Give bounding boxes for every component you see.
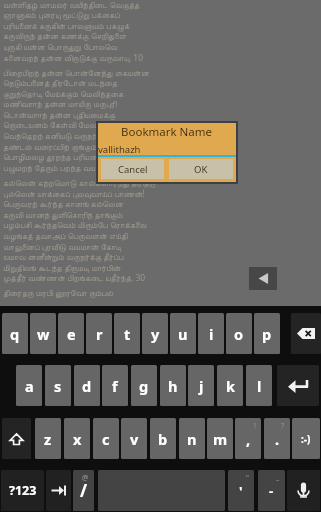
staticText: vallithazh (98, 143, 141, 156)
staticText: வெந்தெறற் கனியடு வருநர் வாழ்த்த (3, 130, 127, 141)
staticText: வள்ளிதழ் மாமலர் வயிந்திடை வெகுத்த (3, 0, 140, 10)
button[interactable]: f (102, 365, 128, 406)
staticText: s (54, 376, 62, 396)
staticText: மிறுதிலங் கூடந்த திருமடி மார்பின் (3, 262, 121, 273)
staticText: Cancel (118, 163, 148, 176)
button[interactable]: Voice input (287, 470, 320, 511)
button[interactable]: i (198, 313, 224, 354)
staticText: e (67, 324, 76, 344)
staticText: y (151, 324, 160, 344)
button[interactable]: e (58, 313, 84, 354)
staticText: _ (276, 473, 280, 483)
button[interactable]: p (254, 313, 280, 354)
staticText: யுருகி யன்ன பொருதுறு போலவெ (3, 41, 118, 52)
button[interactable]: u (170, 313, 196, 354)
staticText: h (168, 376, 178, 396)
button[interactable]: k (217, 365, 243, 406)
staticText: திரைதரு மரபி னூரவோ ரும்பல் (3, 287, 114, 298)
button[interactable]: y (142, 313, 168, 354)
staticText: வழங்கத் தவாஅப் பெருவளன் எய்தி (3, 230, 128, 241)
button[interactable]: w (30, 313, 56, 354)
staticText: சுனைவறந் தன்ன விருடுக்கு வருவாயு. 10 (3, 52, 143, 63)
button[interactable]: Cancel (101, 159, 164, 179)
staticText: கருவிருந் தன்ன கணக்கு செறிதுளை (3, 30, 127, 41)
button[interactable]: o (226, 313, 252, 354)
button[interactable]: - (258, 470, 285, 511)
staticText: மணிவாாந் தன்ன மாயிரு மருபுரி (3, 98, 117, 109)
button[interactable]: Previous page (249, 267, 277, 290)
staticText: g (139, 376, 149, 396)
staticText: பிறைபிறந் தன்ன பொன்னேந்து கையன்ன (3, 67, 149, 78)
staticText: d (82, 376, 92, 396)
button[interactable]: Shift (2, 418, 31, 459)
staticText: ஞானாகம் புரையு மூட்டுறு பக்கைப் (3, 9, 120, 20)
button[interactable]: a (16, 365, 42, 406)
button[interactable]: Enter (277, 365, 319, 406)
staticText: m (213, 429, 228, 449)
staticText: யமாவ னனீன்றும் வருநர்க்கு தீர்ப்ப (3, 251, 124, 262)
staticText: a (25, 376, 34, 396)
staticText: றொடையனம் கேள்வி மேலகத்து (3, 119, 114, 130)
button[interactable]: Backspace (291, 313, 321, 354)
button[interactable]: d (74, 365, 100, 406)
button[interactable]: , (235, 418, 261, 459)
staticText: OK (194, 163, 208, 176)
staticText: n (187, 429, 197, 449)
button[interactable]: t (114, 313, 140, 354)
staticText: / (80, 479, 88, 502)
staticText: கருவி வானந் துளிசொரிந் தாங்கும் (3, 209, 123, 220)
staticText: - (269, 482, 274, 500)
staticText: c (102, 429, 110, 449)
staticText: ' (239, 482, 243, 500)
staticText: o (234, 324, 244, 344)
staticText: கல்லென் சுற்றமொடு கால்கிளாரந்து திரிதரு (3, 177, 156, 188)
staticText: நெடும்பனைத் திரடோன் மடந்தை (3, 77, 118, 88)
staticText: x (73, 429, 82, 449)
staticText: j (199, 376, 204, 396)
button[interactable]: :-) (292, 418, 320, 459)
staticText: q (10, 324, 20, 344)
staticText: குறுந்தொடி யேய்க்கும் மெலிந்தகை (3, 88, 124, 99)
staticText: l (257, 376, 262, 396)
staticText: புல்லென் யாக்கைப் புலவுவாய்ப் பாணன்! (3, 188, 145, 199)
staticText: டொன்வாாந் தன்ன புதியமைக்கு (3, 109, 115, 120)
button[interactable]: s (45, 365, 71, 406)
button[interactable]: / (73, 470, 94, 511)
button[interactable]: c (93, 418, 119, 459)
staticText: f (112, 376, 118, 396)
button[interactable]: ?123 (1, 470, 44, 511)
staticText: . (275, 429, 280, 449)
button[interactable]: x (64, 418, 90, 459)
staticText: b (158, 429, 168, 449)
button[interactable]: r (86, 313, 112, 354)
button[interactable]: n (179, 418, 205, 459)
button[interactable]: q (2, 313, 28, 354)
button[interactable]: l (246, 365, 272, 406)
button[interactable]: b (150, 418, 176, 459)
staticText: பரியனைக் கருகின் பாலனாயம் பகழுக் (3, 20, 130, 31)
staticText: பெருவரற் கூர்ந்த கானங் கல்லென (3, 198, 124, 209)
staticText: w (37, 324, 50, 344)
staticText: ?123 (9, 482, 37, 499)
button[interactable]: OK (169, 159, 233, 179)
staticText: ! (254, 421, 256, 431)
staticText: பழம்பசி கூர்ந்தவெம் மிரும்பே ரொக்கலை (3, 219, 147, 230)
button[interactable]: g (131, 365, 157, 406)
button[interactable]: z (35, 418, 61, 459)
button[interactable]: h (160, 365, 186, 406)
staticText: k (226, 376, 235, 396)
staticText: u (178, 324, 188, 344)
button[interactable]: m (207, 418, 233, 459)
button[interactable]: v (121, 418, 147, 459)
button[interactable]: . (264, 418, 290, 459)
button[interactable]: Tab (46, 470, 71, 511)
staticText: தண்டல் வரைப்பிற் றாங்கும் கனக (3, 141, 118, 152)
staticText: , (246, 429, 251, 449)
staticText: வாலுனைப் புரவிடு வயமான் கோடி (3, 241, 122, 252)
staticText: v (130, 429, 139, 449)
staticText: @ (82, 473, 89, 483)
button[interactable]: j (188, 365, 214, 406)
button[interactable]: ' (228, 470, 254, 511)
staticText: பொழிமலழ தூறந்த பரியன வாழி (3, 151, 118, 162)
